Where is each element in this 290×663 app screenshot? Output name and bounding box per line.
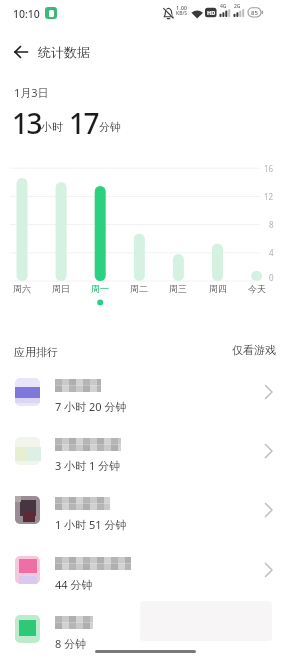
staticText: HD [207,9,216,16]
staticText: 85 [251,9,258,17]
staticText: 17 [69,104,99,142]
staticText: 应用排行 [14,345,58,359]
staticText: 1 小时 51 分钟 [55,517,127,532]
staticText: 10:10 [13,7,40,21]
staticText: 周一 [91,283,109,294]
staticText: 周日 [52,283,70,294]
staticText: 13 [12,104,42,142]
staticText: 仅看游戏 [232,343,276,357]
staticText: 2G [234,3,241,10]
staticText: 周二 [130,283,148,294]
staticText: 周六 [13,283,31,294]
staticText: 4 [269,247,274,258]
staticText: 3 小时 1 分钟 [55,458,121,473]
staticText: 12 [264,191,274,202]
staticText: 7 小时 20 分钟 [55,399,127,414]
button[interactable] [0,547,290,606]
staticText: 统计数据 [38,44,90,60]
staticText: 1月3日 [14,85,49,100]
button[interactable] [8,44,34,66]
staticText: 周四 [209,283,227,294]
staticText: 8 分钟 [55,636,87,651]
staticText: 周三 [169,283,187,294]
staticText: 0 [269,272,274,283]
staticText: 1.00 [176,4,187,11]
staticText: 小时 [41,120,63,134]
staticText: 4G [220,3,227,10]
button[interactable] [0,606,290,663]
staticText: 44 分钟 [55,577,93,592]
staticText: 分钟 [99,120,121,134]
staticText: KB/S [176,10,188,17]
button[interactable] [0,487,290,546]
button[interactable] [0,428,290,487]
staticText: 8 [269,219,274,230]
staticText: 16 [264,163,274,174]
staticText: 今天 [248,283,266,294]
button[interactable] [0,369,290,428]
button[interactable]: 仅看游戏 [226,340,282,360]
